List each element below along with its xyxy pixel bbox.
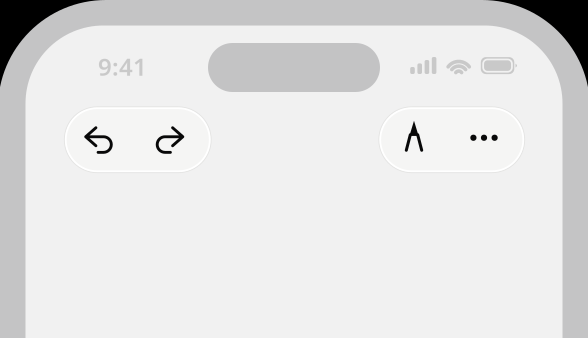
button[interactable]: Text size xyxy=(392,107,436,172)
button[interactable]: Undo xyxy=(72,107,124,172)
staticText: 9:41 xyxy=(98,51,147,82)
button[interactable]: Redo xyxy=(144,107,196,172)
button[interactable]: More xyxy=(462,107,506,172)
